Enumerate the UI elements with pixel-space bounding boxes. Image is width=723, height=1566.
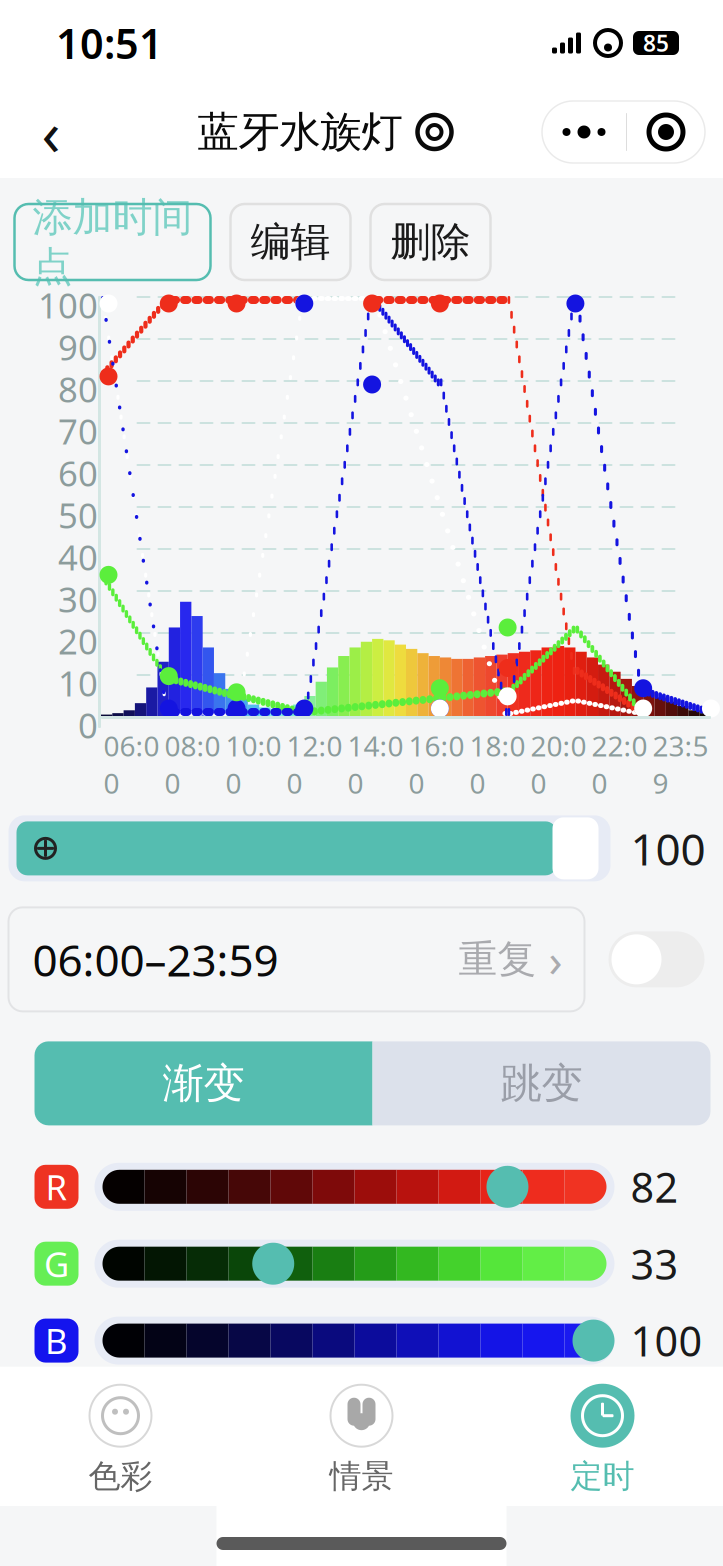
staticText: 20 [58,618,98,664]
staticText: 定时 [570,1457,634,1496]
button[interactable]: 渐变 [34,1041,372,1125]
staticText: 10:00 [225,727,281,801]
staticText: 编辑 [250,217,330,266]
button[interactable]: Back [16,101,86,163]
button[interactable]: 情景 [241,1381,482,1500]
button[interactable]: 删除 [370,204,490,280]
staticText: 50 [58,492,98,538]
staticText: 渐变 [162,1058,244,1109]
staticText: 100 [630,1390,702,1445]
staticText: R [45,1164,67,1210]
staticText: 30 [58,576,98,622]
button[interactable]: 定时 [482,1381,723,1500]
staticText: 添加时间点 [32,193,192,291]
staticText: 重置 [154,1504,240,1556]
staticText: G [44,1241,69,1287]
staticText: 80 [58,366,98,412]
button[interactable]: Close [627,102,705,162]
staticText: 70 [58,408,98,454]
staticText: 14:00 [347,727,403,801]
button[interactable]: Settings [414,112,454,152]
staticText: 33 [630,1236,678,1291]
button[interactable]: 保存 [380,1487,670,1566]
button[interactable]: More [542,102,626,162]
staticText: 23:59 [652,727,708,801]
staticText: 删除 [390,217,470,266]
staticText: 12:00 [286,727,342,801]
staticText: 跳变 [500,1058,582,1109]
staticText: 重复 [458,936,536,983]
staticText: ‹ [41,91,60,173]
staticText: 06:00 [103,727,159,801]
staticText: 100 [38,282,98,328]
staticText: 60 [58,450,98,496]
staticText: 10 [58,660,98,706]
staticText: 色彩 [88,1457,152,1496]
button[interactable]: 色彩 [0,1381,241,1500]
staticText: 蓝牙水族灯 [197,107,402,157]
staticText: 100 [630,819,705,878]
staticText: 100 [630,1313,702,1368]
staticText: 08:00 [164,727,220,801]
staticText: 18:00 [469,727,525,801]
button[interactable]: 重置 [52,1487,342,1566]
staticText: B [45,1318,68,1364]
staticText: 22:00 [591,727,647,801]
staticText: 90 [58,324,98,370]
staticText: 40 [58,534,98,580]
staticText: 06:00–23:59 [32,930,278,989]
staticText: 85 [643,28,669,58]
button[interactable]: 06:00–23:59 [8,907,584,1011]
staticText: 82 [630,1159,678,1214]
button[interactable]: 编辑 [230,204,350,280]
staticText: 16:00 [408,727,464,801]
button[interactable]: 添加时间点 [14,204,210,280]
button[interactable]: 跳变 [372,1041,710,1125]
staticText: 0 [78,702,98,748]
staticText: 情景 [329,1457,393,1496]
staticText: 10:51 [56,16,163,70]
button[interactable]: Enable schedule [608,931,704,987]
staticText: 20:00 [530,727,586,801]
staticText: › [548,929,562,989]
staticText: 保存 [482,1504,568,1556]
